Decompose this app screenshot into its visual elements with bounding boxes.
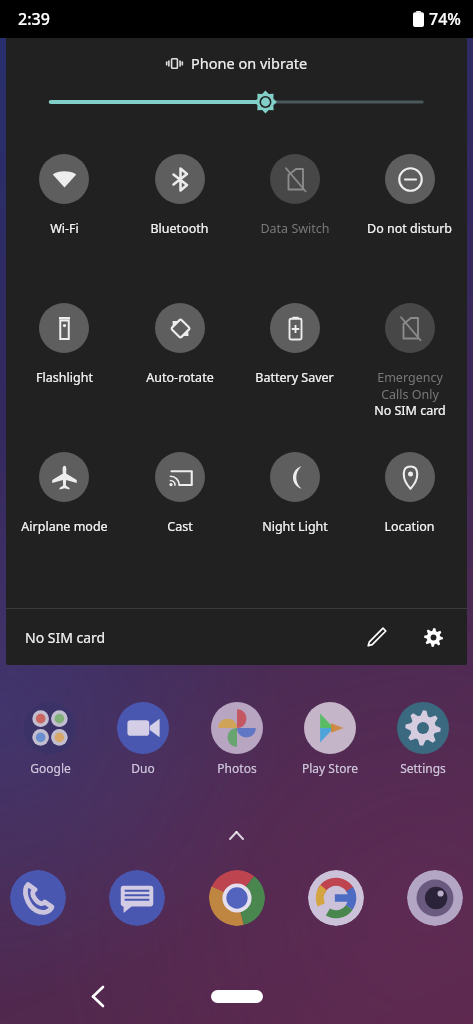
staticText: Bluetooth: [150, 220, 209, 237]
button[interactable]: Flashlight: [6, 281, 122, 430]
staticText: Data Switch: [260, 220, 330, 237]
button[interactable]: Night Light: [237, 430, 352, 579]
staticText: Play Store: [302, 760, 358, 776]
button[interactable]: Duo: [99, 702, 187, 776]
staticText: Photos: [217, 760, 257, 776]
button[interactable]: Settings: [413, 617, 453, 657]
button[interactable]: Battery Saver: [237, 281, 352, 430]
staticText: Flashlight: [36, 369, 93, 386]
staticText: Night Light: [262, 518, 328, 535]
staticText: Location: [384, 518, 435, 535]
button[interactable]: Phone: [10, 870, 66, 926]
staticText: Do not disturb: [367, 220, 452, 237]
staticText: Auto-rotate: [146, 369, 214, 386]
staticText: Settings: [400, 760, 446, 776]
button[interactable]: Do not disturb: [352, 132, 467, 281]
button[interactable]: Camera: [407, 870, 463, 926]
button[interactable]: Airplane mode: [6, 430, 122, 579]
button[interactable]: Back: [78, 977, 116, 1015]
button[interactable]: Google: [6, 702, 94, 776]
button[interactable]: Home: [201, 982, 273, 1010]
staticText: Cast: [167, 518, 193, 535]
staticText: Battery Saver: [255, 369, 334, 386]
staticText: Emergency Calls Only: [377, 369, 443, 402]
button[interactable]: Messages: [109, 870, 165, 926]
button[interactable]: Auto-rotate: [122, 281, 237, 430]
button[interactable]: Data Switch: [237, 132, 352, 281]
staticText: Airplane mode: [21, 518, 108, 535]
button[interactable]: Edit: [357, 617, 397, 657]
button[interactable]: Google: [308, 870, 364, 926]
button[interactable]: Brightness: [6, 88, 467, 116]
staticText: Google: [30, 760, 71, 776]
staticText: No SIM card: [374, 402, 446, 419]
button[interactable]: Emergency Calls Only: [352, 281, 467, 430]
button[interactable]: Wi-Fi: [6, 132, 122, 281]
button[interactable]: Chrome: [209, 870, 265, 926]
staticText: No SIM card: [25, 628, 106, 647]
button[interactable]: Photos: [193, 702, 281, 776]
staticText: 2:39: [18, 8, 50, 30]
button[interactable]: Cast: [122, 430, 237, 579]
staticText: Phone on vibrate: [191, 53, 308, 73]
button[interactable]: Play Store: [286, 702, 374, 776]
staticText: 74%: [429, 8, 461, 30]
staticText: Duo: [131, 760, 155, 776]
button[interactable]: Location: [352, 430, 467, 579]
button[interactable]: Bluetooth: [122, 132, 237, 281]
staticText: Wi-Fi: [50, 220, 79, 237]
button[interactable]: Settings: [379, 702, 467, 776]
